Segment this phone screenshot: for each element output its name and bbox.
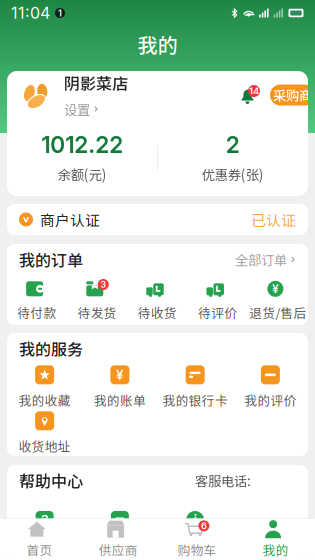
staticText: 待评价 (198, 303, 237, 322)
button[interactable]: ¥ (82, 365, 157, 409)
staticText: 余额(元) (58, 165, 107, 184)
staticText: 我的订单 (19, 248, 83, 271)
staticText: 阴影菜店 (64, 71, 128, 94)
button[interactable]: 设置 (64, 99, 99, 119)
staticText: 我的评价 (244, 391, 296, 409)
staticText: 首页 (26, 541, 52, 559)
staticText: 商户认证 (40, 209, 100, 230)
button[interactable]: ¥ (248, 278, 308, 322)
staticText: 我的 (137, 29, 177, 58)
staticText: 收货地址 (19, 437, 71, 455)
staticText: 退货/售后 (249, 303, 306, 322)
button[interactable]: 采购商 (270, 84, 308, 105)
button[interactable]: 6 (157, 519, 236, 560)
button[interactable]: 我的银行卡 (157, 365, 233, 409)
button[interactable]: 供应商 (79, 519, 158, 560)
staticText: 3 (100, 279, 106, 290)
staticText: 14 (249, 85, 259, 97)
staticText: 全部订单 (235, 250, 287, 269)
button[interactable]: 收货地址 (7, 411, 82, 455)
staticText: 优惠券(张) (202, 165, 264, 184)
staticText: 我的 (263, 541, 289, 559)
staticText: ¥ (272, 282, 279, 296)
staticText: 待付款 (18, 303, 57, 322)
staticText: 11:04 (11, 3, 50, 23)
staticText: 我的账单 (94, 391, 146, 409)
staticText: 我的服务 (19, 337, 83, 360)
button[interactable]: 我的评价 (233, 365, 308, 409)
staticText: 1012.22 (41, 131, 123, 158)
button[interactable]: 待评价 (188, 278, 248, 322)
staticText: 客服电话: (195, 471, 251, 490)
button[interactable]: 商户认证 (7, 204, 308, 235)
staticText: i (194, 512, 197, 528)
staticText: 待收货 (138, 303, 177, 322)
button[interactable]: 我的收藏 (7, 365, 82, 409)
staticText: 我的银行卡 (163, 391, 228, 409)
staticText: 采购商 (273, 85, 312, 105)
button[interactable]: Help (7, 510, 82, 530)
button[interactable]: 3 (67, 278, 127, 322)
button[interactable]: Notifications (239, 84, 261, 106)
button[interactable]: Help (82, 510, 157, 530)
staticText: ? (41, 512, 48, 528)
staticText: 待发货 (78, 303, 117, 322)
staticText: 2 (226, 131, 240, 158)
staticText: 6 (201, 520, 207, 531)
button[interactable]: 待收货 (127, 278, 188, 322)
staticText: 已认证 (251, 209, 296, 230)
button[interactable]: 全部订单 (235, 250, 296, 269)
button[interactable]: 待付款 (7, 278, 67, 322)
button[interactable]: Help (157, 510, 233, 530)
staticText: 供应商 (99, 541, 138, 559)
button[interactable]: 我的 (236, 519, 315, 560)
staticText: ¥ (116, 367, 124, 383)
staticText: 1 (58, 7, 62, 19)
staticText: 我的收藏 (19, 391, 71, 409)
staticText: 设置 (64, 99, 90, 119)
staticText: 购物车 (177, 541, 216, 559)
staticText: 帮助中心 (19, 469, 83, 492)
button[interactable]: 首页 (0, 519, 79, 560)
